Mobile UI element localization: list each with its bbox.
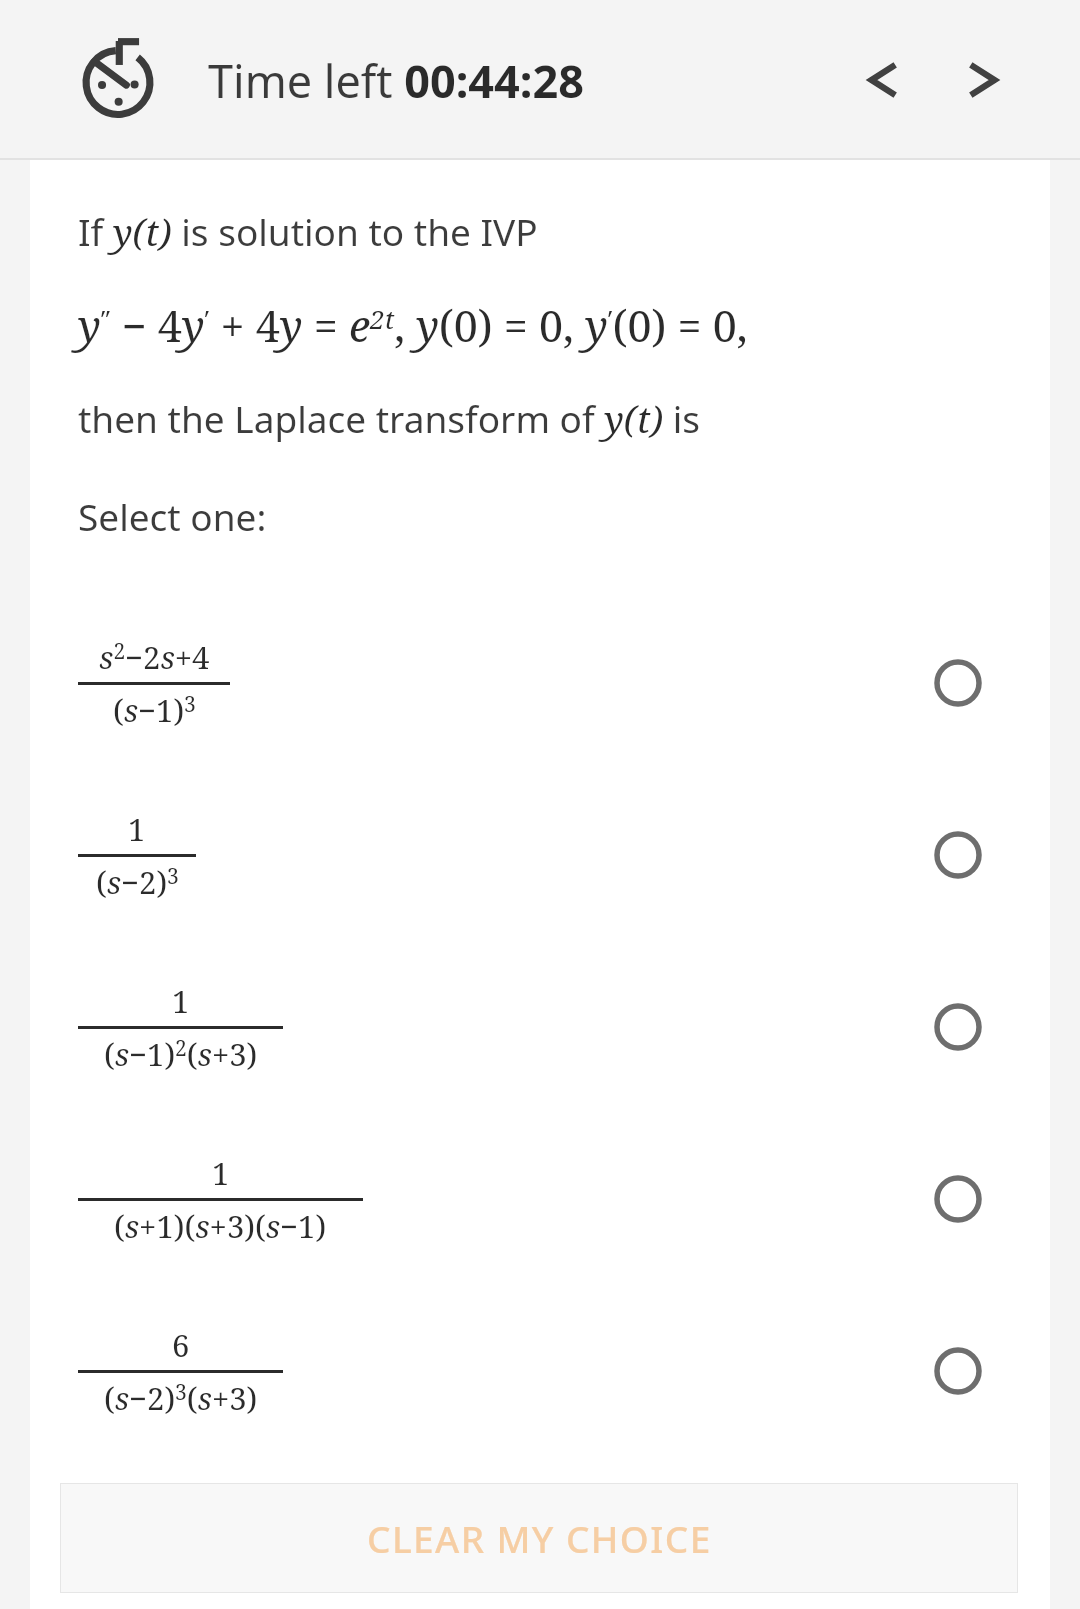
staticText: If y(t) is solution to the IVP	[78, 206, 538, 256]
button[interactable]: 1	[30, 769, 1050, 941]
staticText: Select one:	[78, 491, 267, 541]
staticText: (s−2)3(s+3)	[104, 1377, 258, 1419]
staticText: y′′ − 4y′ + 4y = e2t, y(0) = 0, y′(0) = …	[78, 296, 748, 355]
button[interactable]: Timer	[74, 36, 162, 124]
button[interactable]: Next page	[944, 40, 1024, 120]
button[interactable]: 1	[30, 941, 1050, 1113]
staticText: s2−2s+4	[99, 636, 210, 678]
button[interactable]: 1	[30, 1113, 1050, 1285]
button[interactable]: CLEAR MY CHOICE	[61, 1484, 1017, 1592]
staticText: then the Laplace transform of y(t) is	[78, 393, 700, 443]
staticText: (s+1)(s+3)(s−1)	[114, 1205, 327, 1247]
staticText: 1	[172, 980, 190, 1022]
staticText: Time left 00:44:28	[208, 50, 584, 111]
button[interactable]: 6	[30, 1285, 1050, 1457]
staticText: (s−1)3	[113, 689, 196, 731]
button[interactable]: Previous page	[842, 40, 922, 120]
staticText: 1	[212, 1152, 230, 1194]
staticText: 6	[172, 1324, 190, 1366]
staticText: CLEAR MY CHOICE	[367, 1513, 712, 1563]
staticText: (s−2)3	[96, 861, 179, 903]
staticText: (s−1)2(s+3)	[104, 1033, 258, 1075]
button[interactable]: s2−2s+4	[30, 597, 1050, 769]
staticText: 1	[128, 808, 146, 850]
